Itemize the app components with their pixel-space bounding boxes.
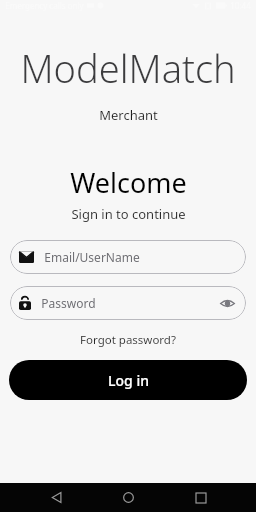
staticText: Log in [108, 371, 149, 390]
button[interactable]: Show password [217, 293, 237, 313]
button[interactable]: Password [10, 286, 246, 320]
staticText: Password [41, 295, 96, 311]
staticText: Merchant [99, 106, 158, 124]
staticText: Email/UserName [44, 249, 140, 265]
button[interactable]: Log in [9, 360, 247, 400]
button[interactable]: Back [39, 483, 73, 512]
button[interactable]: Email/UserName [10, 240, 246, 274]
staticText: Sign in to continue [71, 205, 186, 223]
staticText: ModelMatch [20, 42, 236, 94]
button[interactable]: Recent apps [184, 483, 218, 512]
button[interactable]: Forgot password? [74, 330, 182, 350]
staticText: Welcome [70, 164, 187, 201]
staticText: Forgot password? [80, 332, 176, 348]
button[interactable]: Home [111, 483, 145, 512]
